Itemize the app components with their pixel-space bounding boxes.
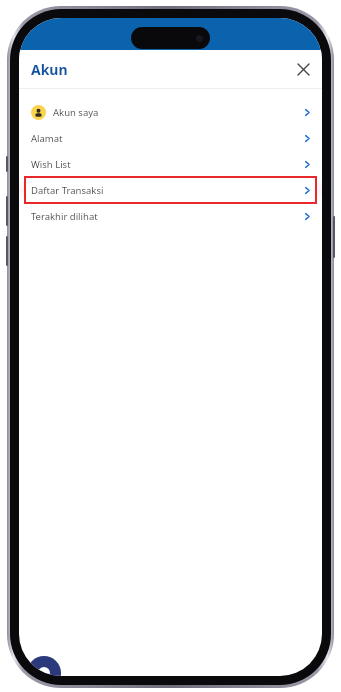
button[interactable]: Terakhir dilihat	[25, 203, 316, 229]
button[interactable]: Alamat	[25, 125, 316, 151]
staticText: Daftar Transaksi	[31, 184, 104, 197]
button[interactable]: Akun saya	[25, 99, 316, 125]
staticText: Akun	[31, 60, 68, 79]
button[interactable]: Wish List	[25, 151, 316, 177]
staticText: Wish List	[31, 158, 71, 171]
staticText: Akun saya	[53, 106, 99, 119]
staticText: Alamat	[31, 132, 63, 145]
button[interactable]: Daftar Transaksi	[25, 177, 316, 203]
button[interactable]: Close	[290, 56, 316, 82]
staticText: Terakhir dilihat	[31, 210, 98, 223]
button[interactable]: Chat	[27, 656, 61, 676]
